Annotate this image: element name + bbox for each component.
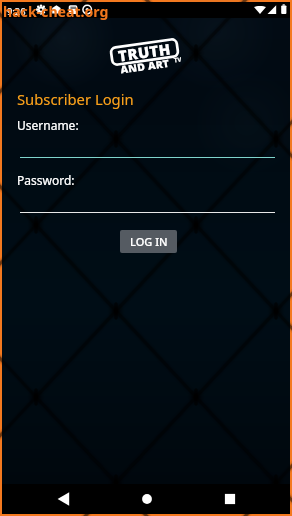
- button[interactable]: Home: [129, 484, 165, 514]
- staticText: AND ART: [119, 56, 170, 74]
- staticText: TRUTH: [117, 38, 172, 66]
- staticText: Subscriber Login: [17, 89, 134, 109]
- staticText: hack-cheat.org: [3, 2, 109, 21]
- staticText: Username:: [17, 117, 79, 133]
- button[interactable]: Recent apps: [212, 484, 248, 514]
- staticText: 9:26: [7, 5, 26, 18]
- staticText: Password:: [17, 172, 75, 188]
- staticText: LOG IN: [130, 234, 168, 249]
- button[interactable]: Back: [46, 484, 82, 514]
- staticText: TV: [173, 55, 182, 64]
- button[interactable]: LOG IN: [120, 230, 177, 253]
